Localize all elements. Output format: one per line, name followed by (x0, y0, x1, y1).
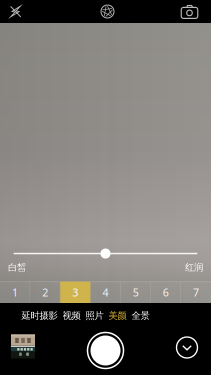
staticText: 4 (102, 285, 108, 299)
button[interactable]: 2 (30, 282, 60, 303)
button[interactable]: 7 (181, 282, 211, 303)
staticText: 美颜 (108, 310, 126, 321)
button[interactable]: HDR (70, 0, 141, 23)
button[interactable]: Flash off (0, 0, 70, 23)
staticText: 5 (133, 285, 139, 299)
button[interactable]: 美颜 (106, 310, 129, 321)
staticText: 7 (193, 285, 199, 299)
button[interactable]: 4 (90, 282, 120, 303)
button[interactable]: Take photo (70, 326, 141, 375)
button[interactable]: Switch camera (141, 0, 211, 23)
button[interactable]: 5 (121, 282, 151, 303)
button[interactable]: 视频 (60, 310, 83, 321)
button[interactable]: 全景 (129, 310, 152, 321)
staticText: 延时摄影 (21, 310, 57, 321)
staticText: 全景 (131, 310, 149, 321)
button[interactable]: 1 (0, 282, 30, 303)
button[interactable]: Photo library (0, 326, 70, 375)
button[interactable]: 照片 (83, 310, 106, 321)
staticText: 视频 (62, 310, 80, 321)
staticText: 3 (72, 285, 78, 299)
button[interactable]: More options (141, 326, 211, 375)
button[interactable]: 延时摄影 (19, 310, 60, 321)
button[interactable]: 6 (151, 282, 181, 303)
staticText: 白皙 (8, 261, 26, 273)
button[interactable]: 3 (60, 282, 90, 303)
staticText: 1 (12, 285, 18, 299)
staticText: 2 (42, 285, 48, 299)
staticText: 红润 (185, 261, 203, 273)
staticText: 6 (163, 285, 169, 299)
staticText: 照片 (85, 310, 103, 321)
